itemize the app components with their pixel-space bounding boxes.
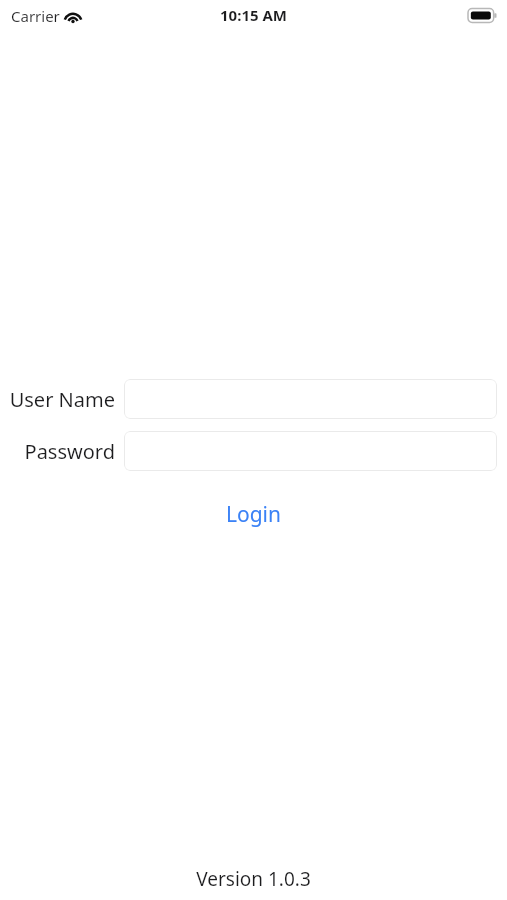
- staticText: Login: [226, 500, 282, 529]
- button[interactable]: Password: [124, 431, 497, 471]
- button[interactable]: Login: [212, 496, 296, 533]
- button[interactable]: User Name: [124, 379, 497, 419]
- other: Battery full: [468, 8, 498, 23]
- staticText: User Name: [9, 386, 115, 413]
- staticText: Password: [24, 438, 115, 465]
- staticText: Version 1.0.3: [196, 866, 311, 892]
- staticText: 10:15 AM: [220, 5, 287, 25]
- staticText: Carrier: [11, 6, 60, 26]
- other: Wi-Fi signal: [63, 7, 83, 24]
